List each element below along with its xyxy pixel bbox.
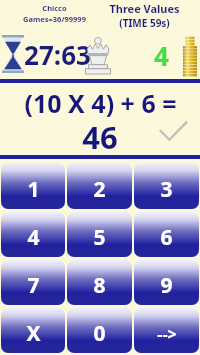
staticText: X <box>26 319 41 348</box>
staticText: (10 X 4) + 6 = <box>24 86 177 120</box>
staticText: 8 <box>93 271 106 300</box>
button[interactable]: 0 <box>67 308 132 353</box>
button[interactable]: 2 <box>67 163 132 209</box>
staticText: Three Values <box>109 1 180 16</box>
staticText: (TIME 59s) <box>119 16 170 29</box>
button[interactable]: 3 <box>134 163 199 209</box>
button[interactable]: 6 <box>134 212 199 257</box>
other: Score coins <box>183 33 197 77</box>
staticText: 7 <box>27 271 40 300</box>
button[interactable]: 4 <box>1 212 65 257</box>
button[interactable]: X <box>1 308 65 353</box>
staticText: 46 <box>82 116 118 158</box>
button[interactable]: Confirm answer <box>158 119 188 145</box>
staticText: 0 <box>93 319 106 348</box>
button[interactable]: 8 <box>67 260 132 305</box>
staticText: 2 <box>93 175 106 204</box>
staticText: 6 <box>160 223 173 252</box>
staticText: 4 <box>154 38 169 73</box>
button[interactable]: 1 <box>1 163 65 209</box>
other: Timer <box>2 35 24 73</box>
staticText: 5 <box>93 223 106 252</box>
button[interactable]: 9 <box>134 260 199 305</box>
staticText: 3 <box>160 175 173 204</box>
staticText: 27:63 <box>24 37 91 72</box>
button[interactable]: 5 <box>67 212 132 257</box>
staticText: --> <box>157 323 177 345</box>
staticText: 4 <box>27 223 40 252</box>
staticText: 9 <box>160 271 173 300</box>
button[interactable]: --> <box>134 308 199 353</box>
staticText: 1 <box>27 175 40 204</box>
staticText: Chicco <box>42 3 67 13</box>
staticText: Games=36/99999 <box>23 14 86 24</box>
button[interactable]: 7 <box>1 260 65 305</box>
other: Level piece <box>81 36 115 76</box>
